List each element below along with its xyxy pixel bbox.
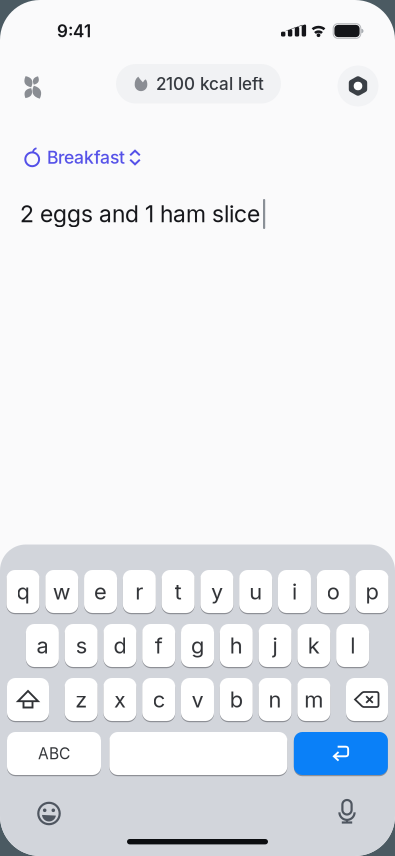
button[interactable]: t (162, 569, 195, 614)
button[interactable]: l (336, 623, 369, 668)
button[interactable]: m (297, 677, 330, 722)
button[interactable]: Breakfast (22, 145, 142, 169)
staticText: x (114, 686, 126, 713)
button[interactable]: ABC (7, 731, 101, 776)
button[interactable]: Settings (337, 65, 378, 106)
staticText: h (230, 632, 243, 659)
staticText: c (153, 686, 165, 713)
staticText: i (292, 578, 297, 605)
staticText: ABC (38, 744, 70, 763)
button[interactable]: a (26, 623, 59, 668)
button[interactable]: e (84, 569, 117, 614)
staticText: 9:41 (57, 21, 91, 41)
button[interactable]: Shift (7, 677, 49, 722)
staticText: v (191, 686, 203, 713)
staticText: g (191, 632, 204, 659)
staticText: e (94, 578, 107, 605)
staticText: y (211, 578, 223, 605)
staticText: m (304, 686, 323, 713)
staticText: r (135, 578, 143, 605)
button[interactable]: Space (109, 731, 287, 776)
staticText: j (273, 632, 278, 659)
button[interactable]: Home (15, 68, 51, 104)
button[interactable]: Return (294, 731, 388, 776)
button[interactable]: i (278, 569, 311, 614)
button[interactable]: v (181, 677, 214, 722)
button[interactable]: x (103, 677, 136, 722)
button[interactable]: c (142, 677, 175, 722)
staticText: a (36, 632, 48, 659)
button[interactable]: p (355, 569, 388, 614)
button[interactable]: Dictation (336, 800, 358, 823)
button[interactable]: d (103, 623, 136, 668)
button[interactable]: k (297, 623, 330, 668)
button[interactable]: o (317, 569, 350, 614)
button[interactable]: Calories left (116, 64, 281, 103)
button[interactable]: q (6, 569, 39, 614)
button[interactable]: z (65, 677, 98, 722)
button[interactable]: y (200, 569, 233, 614)
button[interactable]: b (220, 677, 253, 722)
button[interactable]: w (45, 569, 78, 614)
staticText: s (76, 632, 87, 659)
button[interactable]: j (259, 623, 292, 668)
staticText: Breakfast (47, 147, 125, 168)
staticText: w (53, 578, 71, 605)
staticText: t (175, 578, 182, 605)
button[interactable]: Delete (346, 677, 388, 722)
staticText: p (365, 578, 378, 605)
staticText: u (249, 578, 262, 605)
staticText: k (308, 632, 320, 659)
staticText: b (230, 686, 243, 713)
button[interactable]: n (259, 677, 292, 722)
staticText: d (113, 632, 126, 659)
button[interactable]: f (142, 623, 175, 668)
button[interactable]: r (123, 569, 156, 614)
button[interactable]: u (239, 569, 272, 614)
button[interactable]: Emoji (37, 801, 61, 825)
staticText: n (269, 686, 282, 713)
staticText: f (155, 632, 163, 659)
staticText: z (75, 686, 87, 713)
staticText: q (16, 578, 29, 605)
staticText: 2 eggs and 1 ham slice (20, 200, 260, 228)
staticText: o (327, 578, 340, 605)
staticText: 2100 kcal left (156, 73, 264, 94)
button[interactable]: s (65, 623, 98, 668)
button[interactable]: g (181, 623, 214, 668)
staticText: l (350, 632, 355, 659)
button[interactable]: h (220, 623, 253, 668)
